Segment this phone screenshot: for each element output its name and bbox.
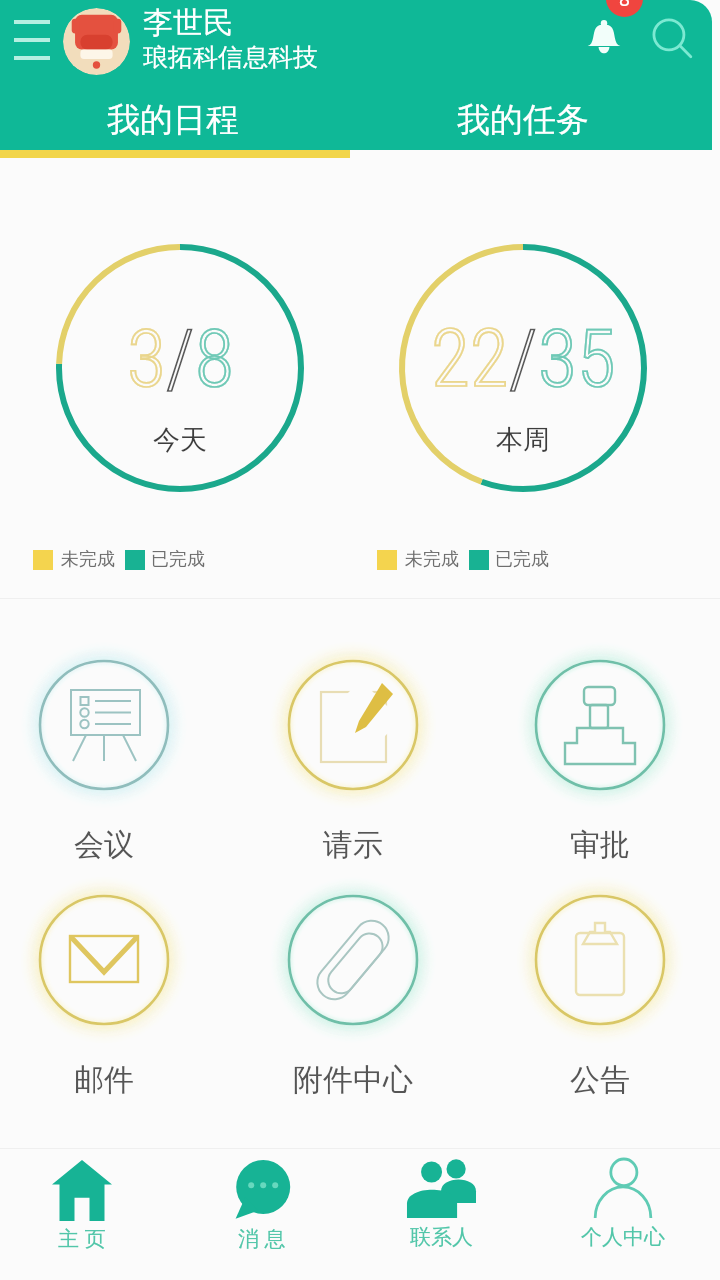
staticText: 公告 <box>570 1061 630 1099</box>
button[interactable]: 主 页 <box>2 1148 162 1280</box>
staticText: 联系人 <box>410 1224 473 1250</box>
staticText: 22 <box>431 312 509 406</box>
staticText: 主 页 <box>58 1224 106 1253</box>
staticText: 3 <box>127 312 166 406</box>
button[interactable]: 我的日程 <box>53 90 293 150</box>
staticText: 我的任务 <box>457 99 589 141</box>
button[interactable]: 公告 <box>500 872 700 1102</box>
button[interactable]: 邮件 <box>4 872 204 1102</box>
staticText: 已完成 <box>495 548 549 571</box>
button[interactable]: Search <box>640 5 704 69</box>
staticText: 今天 <box>153 423 207 457</box>
button[interactable]: Notifications <box>570 3 638 71</box>
staticText: 已完成 <box>151 548 205 571</box>
staticText: 8 <box>619 0 630 12</box>
staticText: 请示 <box>323 826 383 864</box>
button[interactable]: 我的任务 <box>403 90 643 150</box>
staticText: 35 <box>538 312 616 406</box>
button[interactable]: 请示 <box>253 637 453 867</box>
button[interactable]: 附件中心 <box>253 872 453 1102</box>
staticText: 未完成 <box>405 548 459 571</box>
staticText: 附件中心 <box>293 1061 413 1099</box>
staticText: / <box>509 312 538 406</box>
button[interactable]: 联系人 <box>361 1148 521 1280</box>
button[interactable]: 审批 <box>500 637 700 867</box>
staticText: 邮件 <box>74 1061 134 1099</box>
staticText: 8 <box>195 312 234 406</box>
staticText: 会议 <box>74 826 134 864</box>
button[interactable]: Menu <box>0 6 64 70</box>
staticText: 李世民 <box>143 4 233 42</box>
button[interactable]: 消 息 <box>182 1148 342 1280</box>
button[interactable]: 个人中心 <box>543 1148 703 1280</box>
staticText: 个人中心 <box>581 1224 665 1250</box>
staticText: / <box>166 312 195 406</box>
staticText: 我的日程 <box>107 99 239 141</box>
button[interactable]: Profile <box>63 8 130 75</box>
staticText: 琅拓科信息科技 <box>143 42 318 73</box>
staticText: 本周 <box>496 423 550 457</box>
staticText: 未完成 <box>61 548 115 571</box>
staticText: 审批 <box>570 826 630 864</box>
button[interactable]: 会议 <box>4 637 204 867</box>
staticText: 消 息 <box>238 1224 286 1253</box>
